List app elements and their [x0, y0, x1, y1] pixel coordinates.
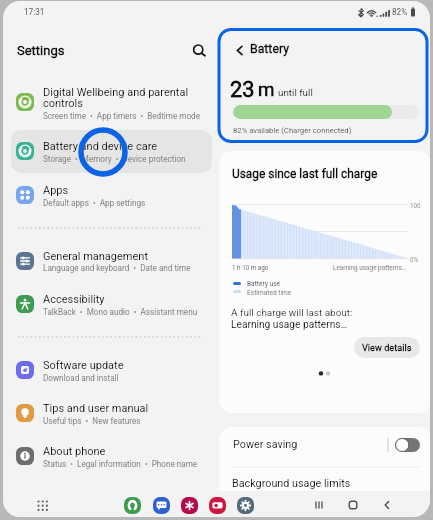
staticText: Default apps • App settings: [43, 198, 146, 208]
button[interactable]: [219, 467, 430, 507]
button[interactable]: Camera: [209, 497, 226, 514]
button[interactable]: All apps: [31, 494, 53, 516]
button[interactable]: Back: [231, 42, 247, 58]
button[interactable]: Gallery: [181, 497, 198, 514]
staticText: General management: [43, 250, 148, 263]
staticText: 1 h 10 m ago: [232, 264, 269, 271]
button[interactable]: Messages: [153, 497, 170, 514]
button[interactable]: Power saving toggle: [395, 438, 420, 452]
button[interactable]: [11, 131, 212, 174]
staticText: A full charge will last about:: [231, 307, 353, 319]
staticText: controls: [43, 97, 83, 110]
button[interactable]: [219, 427, 430, 467]
staticText: Battery use: [247, 280, 281, 288]
staticText: 100: [410, 202, 421, 209]
button[interactable]: Back: [376, 494, 398, 516]
staticText: Language and keyboard • Date and time: [43, 263, 191, 273]
staticText: Screen time • App timers • Bedtime mode: [43, 111, 200, 121]
staticText: 0%: [410, 256, 419, 263]
button[interactable]: [11, 80, 212, 128]
staticText: Digital Wellbeing and parental: [43, 86, 189, 99]
button[interactable]: [11, 175, 212, 218]
staticText: Battery and device care: [43, 140, 158, 153]
staticText: Accessibility: [43, 293, 105, 306]
staticText: Learning usage patterns…: [231, 319, 348, 331]
button[interactable]: Home: [342, 494, 364, 516]
staticText: m: [258, 79, 275, 101]
staticText: Useful tips • New features: [43, 416, 141, 426]
staticText: Usage since last full charge: [232, 167, 378, 181]
button[interactable]: [11, 350, 212, 393]
staticText: TalkBack • Mono audio • Assistant menu: [43, 307, 198, 317]
staticText: About phone: [43, 445, 106, 458]
staticText: until full: [278, 87, 313, 98]
button[interactable]: Phone: [124, 497, 141, 514]
staticText: Storage • Memory • Device protection: [43, 154, 186, 164]
button[interactable]: Settings: [237, 497, 254, 514]
staticText: Estimated time: [247, 289, 292, 297]
button[interactable]: [11, 283, 212, 326]
staticText: 82% available (Charger connected): [233, 126, 352, 135]
button[interactable]: Recents: [308, 494, 330, 516]
staticText: View details: [362, 342, 412, 353]
staticText: Status • Legal information • Phone name: [43, 459, 198, 469]
button[interactable]: [11, 436, 212, 479]
staticText: Battery: [250, 42, 290, 56]
staticText: Software update: [43, 359, 124, 372]
button[interactable]: View details: [354, 337, 420, 358]
staticText: Learning usage patterns…: [333, 264, 407, 272]
staticText: 17:31: [24, 7, 45, 17]
staticText: Settings: [17, 43, 65, 58]
button[interactable]: Search: [186, 37, 211, 62]
staticText: 23: [230, 77, 255, 103]
staticText: Power saving: [233, 438, 298, 451]
staticText: Background usage limits: [232, 477, 351, 490]
button[interactable]: [11, 393, 212, 436]
button[interactable]: [11, 240, 212, 283]
staticText: Download and install: [43, 373, 119, 383]
staticText: 82%: [392, 7, 408, 17]
staticText: Tips and user manual: [43, 402, 149, 415]
staticText: Apps: [43, 184, 69, 197]
